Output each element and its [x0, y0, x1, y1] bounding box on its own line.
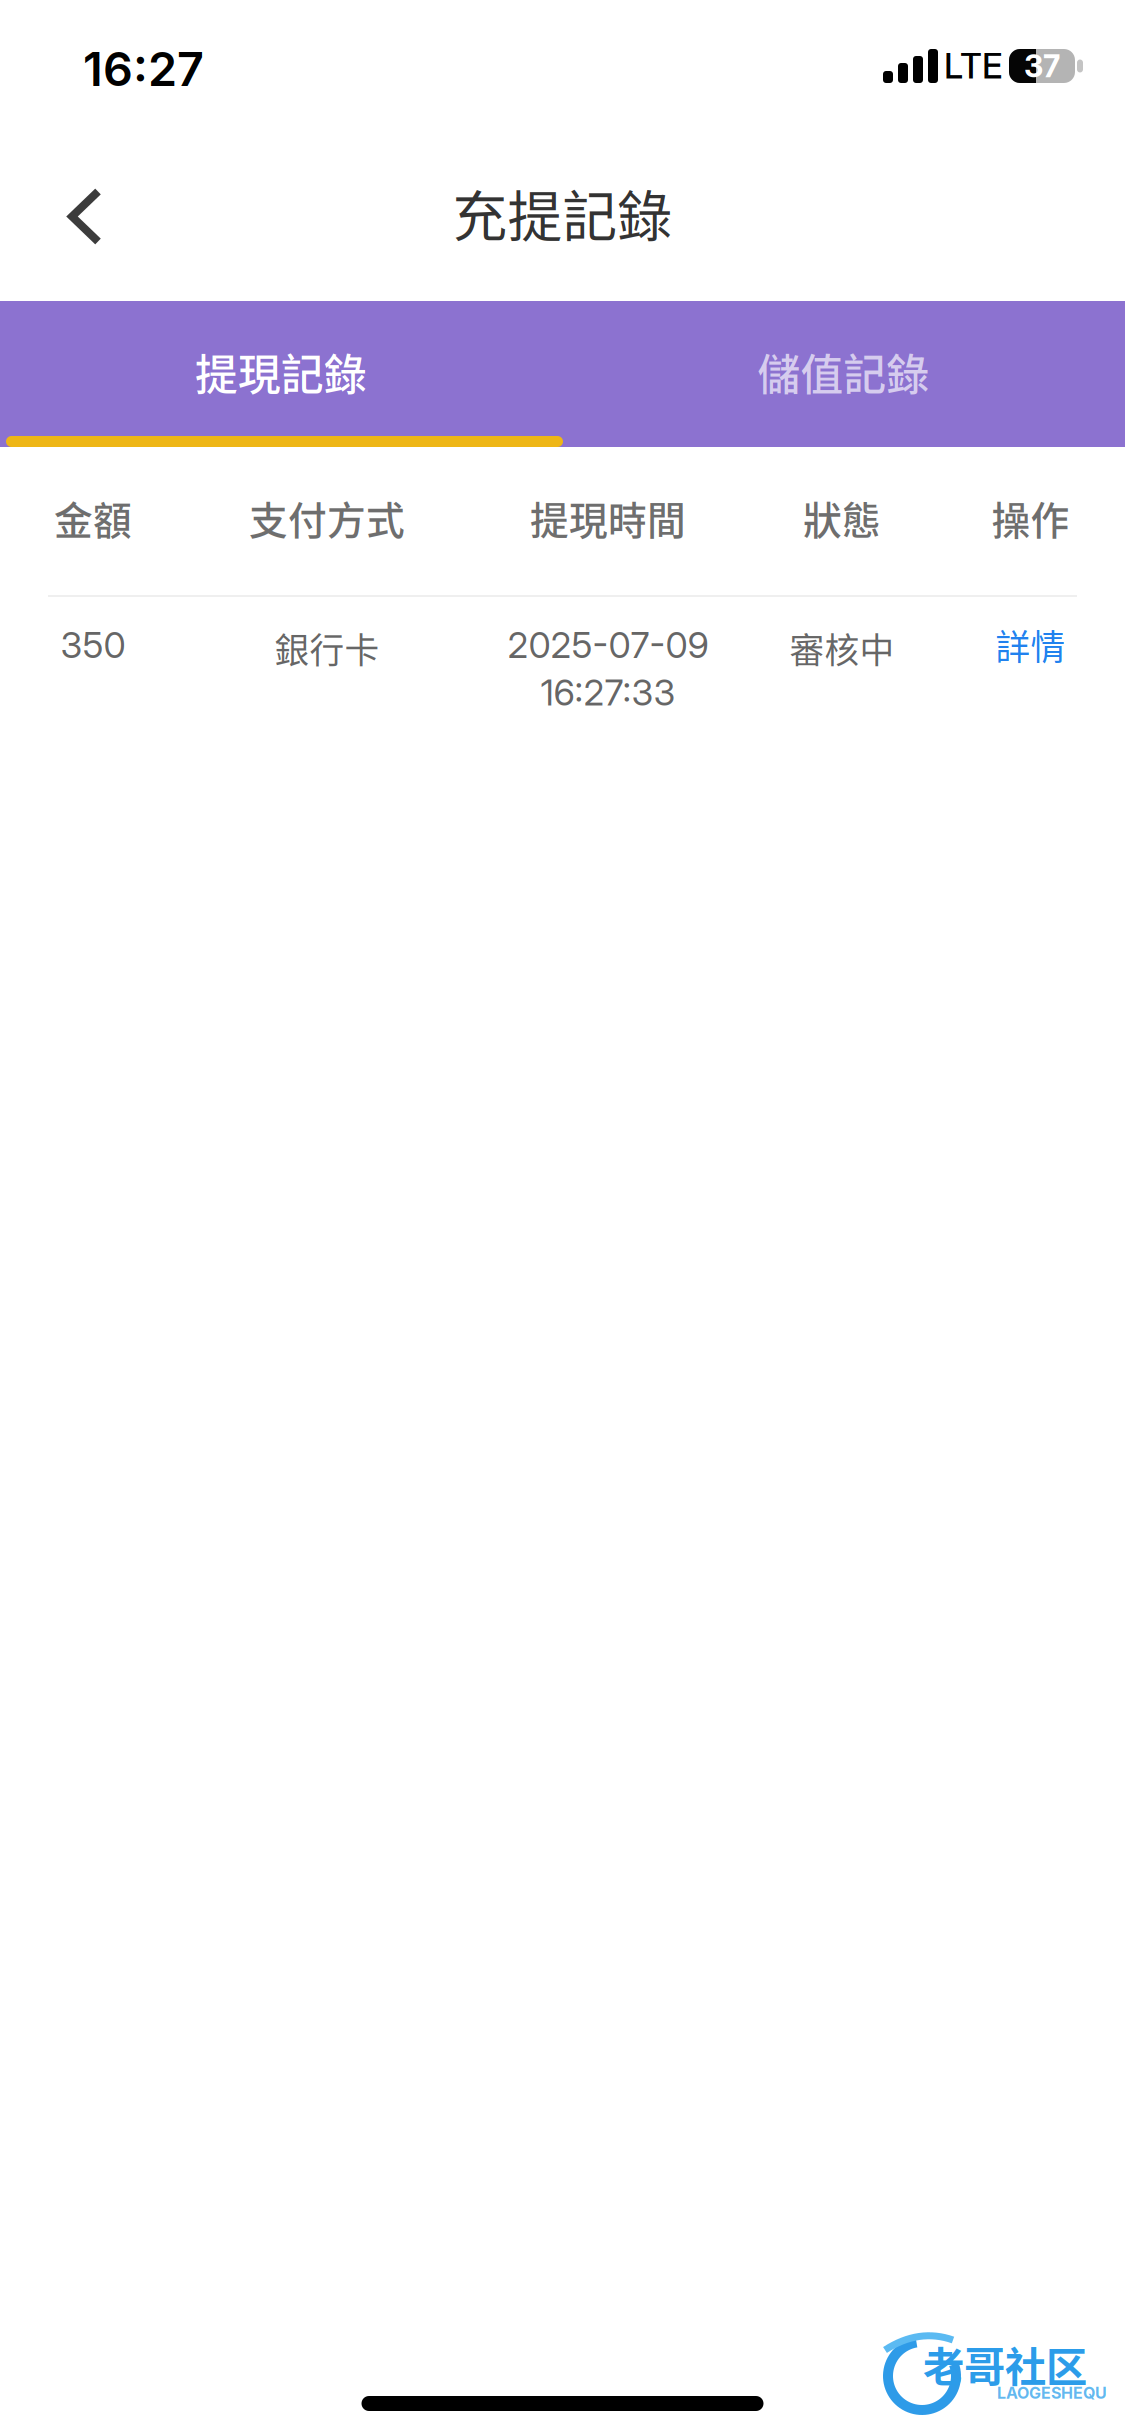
staticText: 老哥社区	[923, 2334, 1087, 2394]
staticText: 提現記錄	[195, 341, 367, 403]
staticText: LAOGESHEQU	[997, 2383, 1107, 2403]
staticText: 支付方式	[249, 490, 405, 546]
staticText: 提現時間	[530, 490, 686, 546]
staticText: 儲值記錄	[757, 341, 929, 403]
staticText: 審核中	[789, 623, 894, 673]
staticText: 金額	[54, 490, 132, 546]
button[interactable]: Back	[70, 166, 170, 266]
staticText: 銀行卡	[274, 623, 379, 673]
staticText: 16:27	[83, 41, 204, 97]
staticText: 16:27:33	[540, 671, 675, 714]
staticText: 350	[60, 623, 125, 667]
staticText: 2025-07-09	[507, 623, 708, 667]
button[interactable]: 提現記錄	[0, 301, 562, 447]
button[interactable]: 詳情	[936, 623, 1125, 667]
staticText: 37	[1024, 47, 1060, 84]
staticText: LTE	[944, 45, 1003, 87]
staticText: 充提記錄	[452, 173, 672, 252]
staticText: 狀態	[803, 490, 881, 546]
staticText: 詳情	[995, 620, 1065, 670]
button[interactable]: 儲值記錄	[562, 301, 1125, 447]
staticText: 操作	[991, 490, 1069, 546]
